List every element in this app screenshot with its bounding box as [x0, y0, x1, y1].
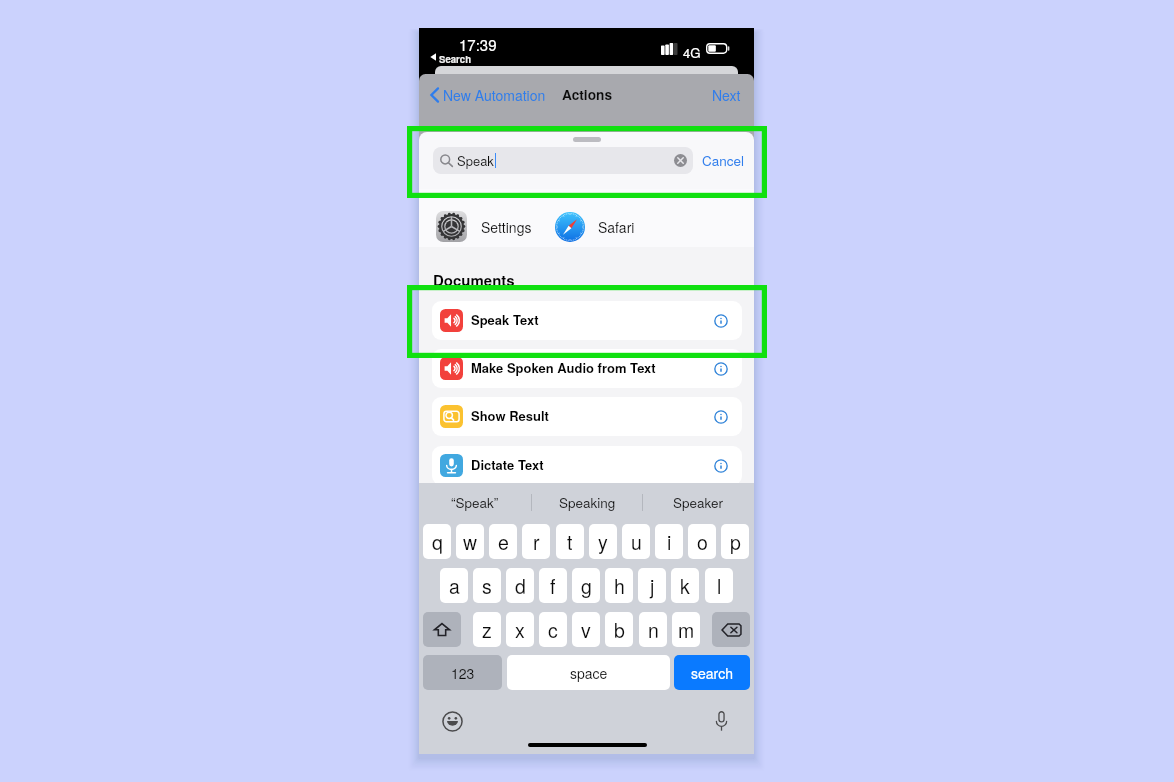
staticText: h — [614, 572, 625, 600]
staticText: Cancel — [702, 151, 745, 170]
button[interactable]: Clear text — [674, 154, 687, 167]
button[interactable]: r — [522, 524, 550, 559]
staticText: n — [648, 616, 659, 644]
staticText: space — [570, 663, 608, 683]
staticText: v — [581, 616, 591, 644]
button[interactable]: v — [572, 612, 600, 647]
button[interactable]: m — [672, 612, 700, 647]
staticText: e — [498, 528, 509, 556]
staticText: o — [697, 528, 708, 556]
staticText: b — [614, 616, 625, 644]
button[interactable]: More info — [714, 362, 728, 376]
button[interactable]: q — [423, 524, 451, 559]
button[interactable]: c — [539, 612, 567, 647]
button[interactable]: More info — [714, 314, 728, 328]
button[interactable]: f — [539, 568, 567, 603]
staticText: Speak Text — [471, 310, 539, 329]
staticText: r — [533, 528, 540, 556]
button[interactable]: k — [671, 568, 699, 603]
staticText: search — [691, 663, 733, 683]
button[interactable]: a — [440, 568, 468, 603]
button[interactable]: Show Result — [432, 397, 742, 436]
button[interactable]: Speaking — [531, 483, 643, 521]
button[interactable]: d — [506, 568, 534, 603]
button[interactable]: New Automation — [419, 80, 552, 110]
button[interactable]: Speaker — [642, 483, 754, 521]
staticText: a — [449, 572, 460, 600]
staticText: Settings — [481, 217, 532, 237]
staticText: p — [730, 528, 741, 556]
button[interactable]: Backspace — [712, 612, 750, 647]
button[interactable]: z — [473, 612, 501, 647]
button[interactable]: Safari — [555, 211, 668, 242]
button[interactable]: search — [674, 655, 750, 690]
staticText: Speaker — [673, 493, 724, 512]
staticText: l — [717, 572, 722, 600]
button[interactable]: More info — [714, 459, 728, 473]
button[interactable]: Next — [702, 80, 754, 110]
staticText: New Automation — [443, 85, 546, 105]
button[interactable]: Make Spoken Audio from Text — [432, 349, 742, 388]
button[interactable]: Cancel — [702, 147, 750, 174]
button[interactable]: Dictate Text — [432, 446, 742, 485]
staticText: Show Result — [471, 406, 549, 425]
button[interactable]: Dictation — [714, 710, 729, 732]
button[interactable]: More info — [714, 410, 728, 424]
staticText: Documents — [433, 269, 515, 290]
button[interactable]: space — [507, 655, 670, 690]
staticText: x — [515, 616, 525, 644]
staticText: f — [550, 572, 556, 600]
button[interactable]: s — [473, 568, 501, 603]
staticText: t — [567, 528, 573, 556]
button[interactable]: b — [605, 612, 633, 647]
button[interactable]: Speak Text — [432, 301, 742, 340]
staticText: Speak — [457, 151, 494, 170]
staticText: Make Spoken Audio from Text — [471, 358, 656, 377]
staticText: Next — [712, 85, 741, 105]
button[interactable]: y — [589, 524, 617, 559]
staticText: u — [631, 528, 642, 556]
staticText: m — [678, 616, 695, 644]
button[interactable]: w — [456, 524, 484, 559]
button[interactable]: 123 — [423, 655, 502, 690]
staticText: y — [598, 528, 608, 556]
staticText: Safari — [598, 217, 635, 237]
button[interactable]: “Speak” — [419, 483, 531, 521]
staticText: c — [548, 616, 558, 644]
staticText: 4G — [683, 43, 701, 62]
staticText: g — [581, 572, 592, 600]
button[interactable]: j — [638, 568, 666, 603]
staticText: d — [515, 572, 526, 600]
staticText: “Speak” — [451, 493, 499, 512]
staticText: q — [432, 528, 443, 556]
button[interactable]: e — [489, 524, 517, 559]
staticText: Search — [439, 52, 471, 66]
staticText: 17:39 — [459, 34, 497, 55]
staticText: Actions — [562, 85, 612, 105]
button[interactable]: x — [506, 612, 534, 647]
staticText: Dictate Text — [471, 455, 544, 474]
button[interactable]: u — [622, 524, 650, 559]
button[interactable]: g — [572, 568, 600, 603]
button[interactable]: t — [556, 524, 584, 559]
staticText: s — [482, 572, 492, 600]
staticText: 123 — [451, 663, 475, 683]
button[interactable]: Speak — [433, 147, 693, 174]
staticText: j — [650, 572, 655, 600]
staticText: Speaking — [559, 493, 616, 512]
button[interactable]: o — [688, 524, 716, 559]
button[interactable]: p — [721, 524, 749, 559]
button[interactable]: Emoji keyboard — [442, 711, 463, 732]
staticText: z — [482, 616, 492, 644]
staticText: w — [463, 528, 478, 556]
staticText: i — [667, 528, 672, 556]
button[interactable]: i — [655, 524, 683, 559]
button[interactable]: l — [705, 568, 733, 603]
button[interactable]: n — [639, 612, 667, 647]
button[interactable]: Shift — [423, 612, 461, 647]
button[interactable]: Settings — [436, 211, 543, 242]
staticText: k — [680, 572, 690, 600]
button[interactable]: h — [605, 568, 633, 603]
